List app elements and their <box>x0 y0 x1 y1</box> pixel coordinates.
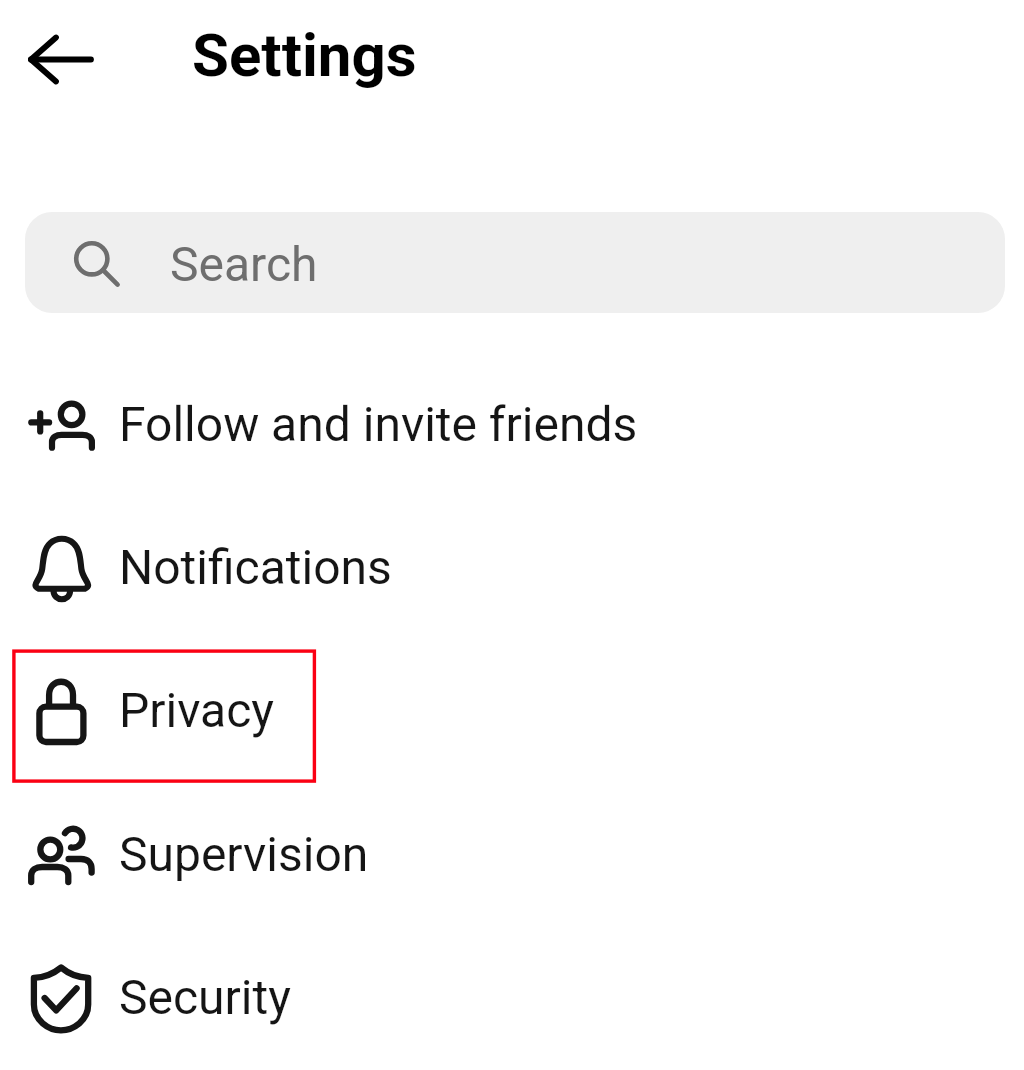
staticText: Privacy <box>119 682 275 738</box>
button[interactable]: Search <box>25 212 1005 313</box>
button[interactable]: Security <box>0 927 1024 1070</box>
button[interactable]: Notifications <box>0 497 1024 640</box>
staticText: Security <box>119 969 291 1025</box>
staticText: Notifications <box>119 539 392 595</box>
staticText: Supervision <box>119 826 369 882</box>
staticText: Settings <box>192 20 417 90</box>
staticText: Follow and invite friends <box>119 396 638 452</box>
button[interactable]: Follow and invite friends <box>0 354 1024 497</box>
button[interactable]: Privacy <box>0 640 1024 783</box>
button[interactable]: Supervision <box>0 784 1024 927</box>
button[interactable]: Back <box>16 24 105 95</box>
staticText: Search <box>170 236 318 292</box>
